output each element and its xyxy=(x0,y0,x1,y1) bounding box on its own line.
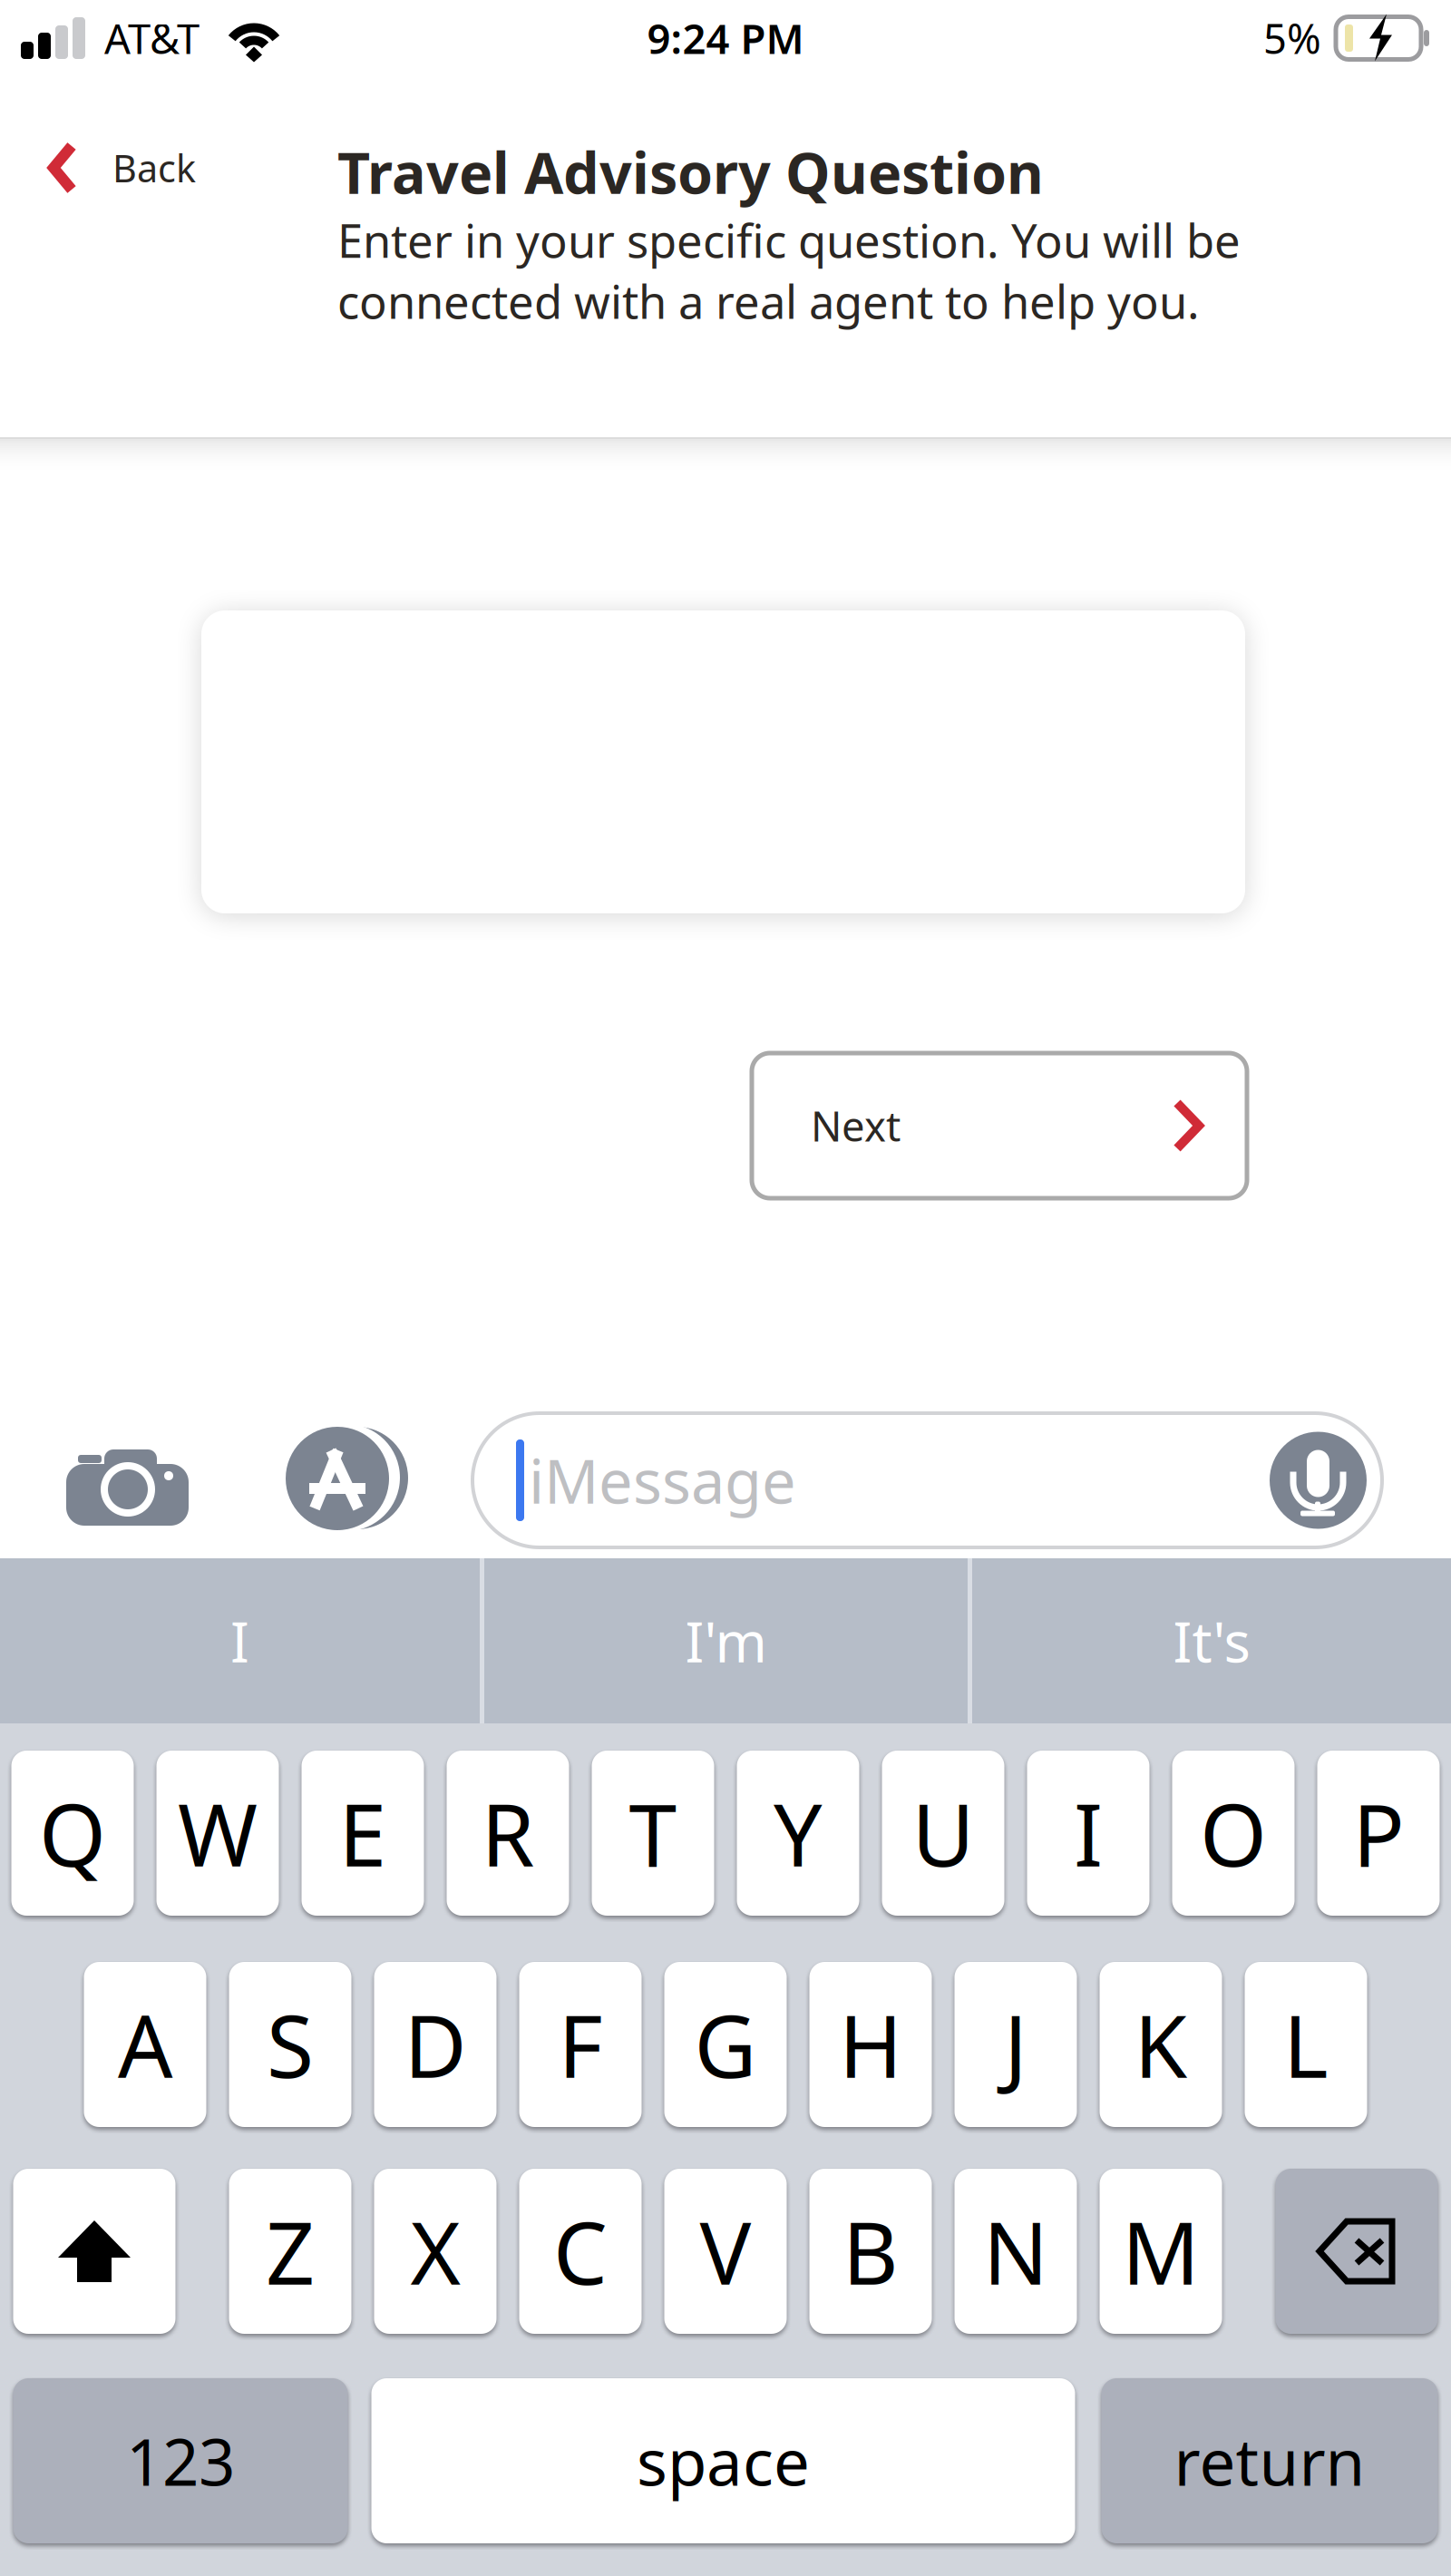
button[interactable]: Next xyxy=(752,1053,1247,1198)
staticText: D xyxy=(404,1987,467,2101)
button[interactable]: G xyxy=(664,1962,787,2127)
staticText: Next xyxy=(811,1098,901,1153)
button[interactable]: K xyxy=(1100,1962,1222,2127)
button[interactable]: D xyxy=(374,1962,497,2127)
button[interactable]: U xyxy=(882,1751,1004,1916)
staticText: M xyxy=(1122,2194,1200,2308)
button[interactable]: A xyxy=(84,1962,206,2127)
button[interactable]: Delete xyxy=(1276,2169,1438,2334)
button[interactable]: Y xyxy=(737,1751,859,1916)
button[interactable]: B xyxy=(809,2169,932,2334)
staticText: B xyxy=(842,2194,899,2308)
staticText: Travel Advisory Question xyxy=(337,134,1044,210)
staticText: I'm xyxy=(685,1604,767,1678)
staticText: AT&T xyxy=(104,11,200,65)
button[interactable]: I xyxy=(1027,1751,1149,1916)
button[interactable]: Camera xyxy=(66,1442,189,1518)
button[interactable]: V xyxy=(664,2169,787,2334)
staticText: 123 xyxy=(126,2418,235,2503)
button[interactable]: P xyxy=(1317,1751,1440,1916)
button[interactable]: S xyxy=(229,1962,351,2127)
staticText: 5% xyxy=(1263,11,1321,65)
staticText: O xyxy=(1200,1776,1267,1890)
button[interactable]: O xyxy=(1172,1751,1295,1916)
button[interactable]: Q xyxy=(11,1751,134,1916)
button[interactable]: H xyxy=(809,1962,932,2127)
button[interactable]: Z xyxy=(229,2169,351,2334)
button[interactable]: J xyxy=(954,1962,1077,2127)
staticText: A xyxy=(118,1987,172,2101)
button[interactable]: F xyxy=(519,1962,642,2127)
staticText: It's xyxy=(1173,1604,1250,1678)
staticText: V xyxy=(700,2194,751,2308)
staticText: Z xyxy=(266,2194,315,2308)
staticText: space xyxy=(637,2418,810,2503)
staticText: Y xyxy=(774,1776,823,1890)
button[interactable]: N xyxy=(954,2169,1077,2334)
button[interactable]: W xyxy=(156,1751,279,1916)
staticText: U xyxy=(912,1776,974,1890)
staticText: Q xyxy=(39,1776,106,1890)
staticText: W xyxy=(178,1776,258,1890)
staticText: Enter in your specific question. You wil… xyxy=(337,210,1241,332)
staticText: I xyxy=(1074,1776,1103,1890)
staticText: return xyxy=(1174,2418,1365,2503)
button[interactable]: space xyxy=(371,2378,1075,2543)
button[interactable]: return xyxy=(1101,2378,1438,2543)
staticText: J xyxy=(1004,1987,1027,2101)
staticText: H xyxy=(839,1987,902,2101)
button[interactable]: X xyxy=(374,2169,497,2334)
staticText: P xyxy=(1353,1776,1404,1890)
staticText: iMessage xyxy=(529,1440,796,1520)
staticText: R xyxy=(481,1776,535,1890)
button[interactable]: Shift xyxy=(13,2169,175,2334)
staticText: I xyxy=(230,1604,249,1678)
staticText: T xyxy=(629,1776,677,1890)
button[interactable]: It's xyxy=(972,1558,1451,1723)
button[interactable]: App Store xyxy=(272,1429,406,1532)
staticText: G xyxy=(694,1987,757,2101)
button[interactable]: M xyxy=(1100,2169,1222,2334)
button[interactable]: T xyxy=(592,1751,714,1916)
staticText: Back xyxy=(112,143,196,193)
staticText: N xyxy=(983,2194,1048,2308)
staticText: 9:24 PM xyxy=(647,11,804,65)
button[interactable]: I xyxy=(0,1558,480,1723)
staticText: L xyxy=(1283,1987,1329,2101)
staticText: K xyxy=(1134,1987,1188,2101)
button[interactable]: Back xyxy=(0,139,219,197)
button[interactable]: R xyxy=(447,1751,569,1916)
staticText: C xyxy=(553,2194,608,2308)
button[interactable]: C xyxy=(519,2169,642,2334)
button[interactable]: L xyxy=(1245,1962,1367,2127)
staticText: S xyxy=(267,1987,314,2101)
staticText: E xyxy=(339,1776,387,1890)
staticText: X xyxy=(410,2194,460,2308)
staticText: F xyxy=(558,1987,603,2101)
button[interactable]: E xyxy=(302,1751,424,1916)
button[interactable]: 123 xyxy=(13,2378,348,2543)
button[interactable]: I'm xyxy=(484,1558,968,1723)
